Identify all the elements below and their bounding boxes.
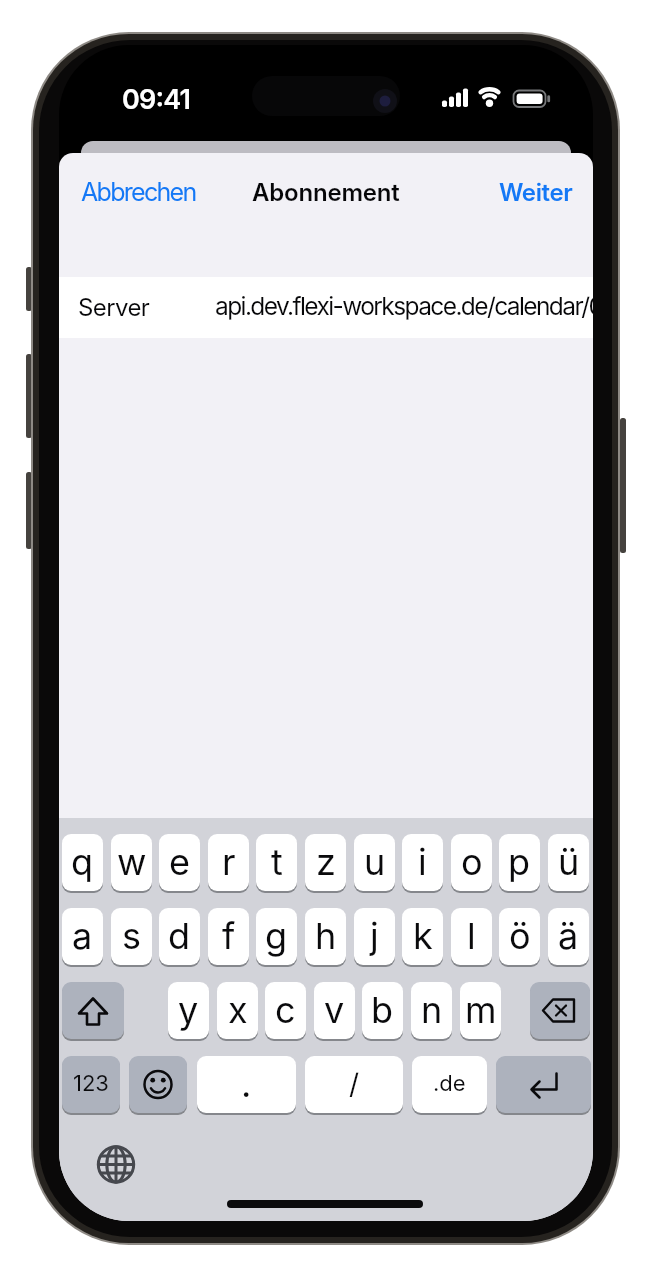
button[interactable]: o: [451, 834, 492, 891]
staticText: .: [241, 1062, 252, 1106]
staticText: y: [178, 988, 199, 1032]
button[interactable]: .de: [412, 1056, 487, 1113]
staticText: Abonnement: [252, 178, 400, 207]
staticText: a: [72, 914, 93, 958]
button[interactable]: c: [265, 982, 306, 1039]
staticText: j: [370, 914, 379, 958]
button[interactable]: ä: [548, 908, 589, 965]
button[interactable]: e: [159, 834, 200, 891]
staticText: Abbrechen: [81, 177, 196, 207]
staticText: t: [271, 840, 283, 884]
button[interactable]: Weiter: [393, 175, 573, 209]
staticText: k: [413, 914, 433, 958]
button[interactable]: b: [362, 982, 403, 1039]
button[interactable]: f: [208, 908, 249, 965]
staticText: g: [265, 914, 288, 958]
button[interactable]: .: [197, 1056, 296, 1113]
button[interactable]: m: [460, 982, 501, 1039]
staticText: z: [316, 840, 336, 884]
staticText: i: [418, 840, 427, 884]
button[interactable]: q: [62, 834, 103, 891]
staticText: .de: [433, 1070, 466, 1097]
staticText: m: [465, 988, 497, 1032]
button[interactable]: r: [208, 834, 249, 891]
button[interactable]: [496, 1056, 591, 1113]
staticText: e: [169, 840, 190, 884]
staticText: q: [71, 840, 94, 884]
button[interactable]: n: [411, 982, 452, 1039]
button[interactable]: i: [402, 834, 443, 891]
staticText: w: [117, 840, 147, 884]
button[interactable]: l: [451, 908, 492, 965]
staticText: /: [349, 1067, 360, 1101]
button[interactable]: h: [305, 908, 346, 965]
staticText: n: [421, 988, 443, 1032]
button[interactable]: k: [402, 908, 443, 965]
button[interactable]: p: [499, 834, 540, 891]
staticText: b: [371, 988, 394, 1032]
button[interactable]: t: [256, 834, 297, 891]
button[interactable]: u: [354, 834, 395, 891]
staticText: 123: [73, 1070, 109, 1097]
button[interactable]: Server: [59, 277, 593, 338]
staticText: api.dev.flexi-workspace.de/calendar/0504…: [215, 291, 593, 321]
staticText: ä: [558, 914, 579, 958]
button[interactable]: x: [217, 982, 258, 1039]
staticText: x: [228, 988, 248, 1032]
staticText: p: [508, 840, 531, 884]
button[interactable]: z: [305, 834, 346, 891]
button[interactable]: /: [305, 1056, 403, 1113]
button[interactable]: g: [256, 908, 297, 965]
staticText: Server: [78, 293, 150, 322]
staticText: s: [122, 914, 142, 958]
button[interactable]: j: [354, 908, 395, 965]
staticText: ö: [509, 914, 531, 958]
staticText: c: [275, 988, 296, 1032]
staticText: u: [364, 840, 386, 884]
button[interactable]: [62, 982, 124, 1039]
staticText: f: [222, 914, 236, 958]
staticText: 09:41: [122, 83, 191, 116]
button[interactable]: w: [111, 834, 152, 891]
staticText: h: [315, 914, 337, 958]
button[interactable]: ü: [548, 834, 589, 891]
staticText: l: [467, 914, 476, 958]
button[interactable]: 123: [62, 1056, 120, 1113]
button[interactable]: [530, 982, 590, 1039]
button[interactable]: [129, 1056, 187, 1113]
button[interactable]: Abbrechen: [81, 175, 261, 209]
button[interactable]: ö: [499, 908, 540, 965]
button[interactable]: v: [314, 982, 355, 1039]
button[interactable]: s: [111, 908, 152, 965]
staticText: v: [324, 988, 345, 1032]
button[interactable]: d: [159, 908, 200, 965]
staticText: ü: [558, 840, 580, 884]
staticText: r: [222, 840, 236, 884]
button[interactable]: y: [168, 982, 209, 1039]
staticText: o: [461, 840, 483, 884]
staticText: Weiter: [499, 178, 573, 207]
staticText: d: [168, 914, 191, 958]
button[interactable]: a: [62, 908, 103, 965]
